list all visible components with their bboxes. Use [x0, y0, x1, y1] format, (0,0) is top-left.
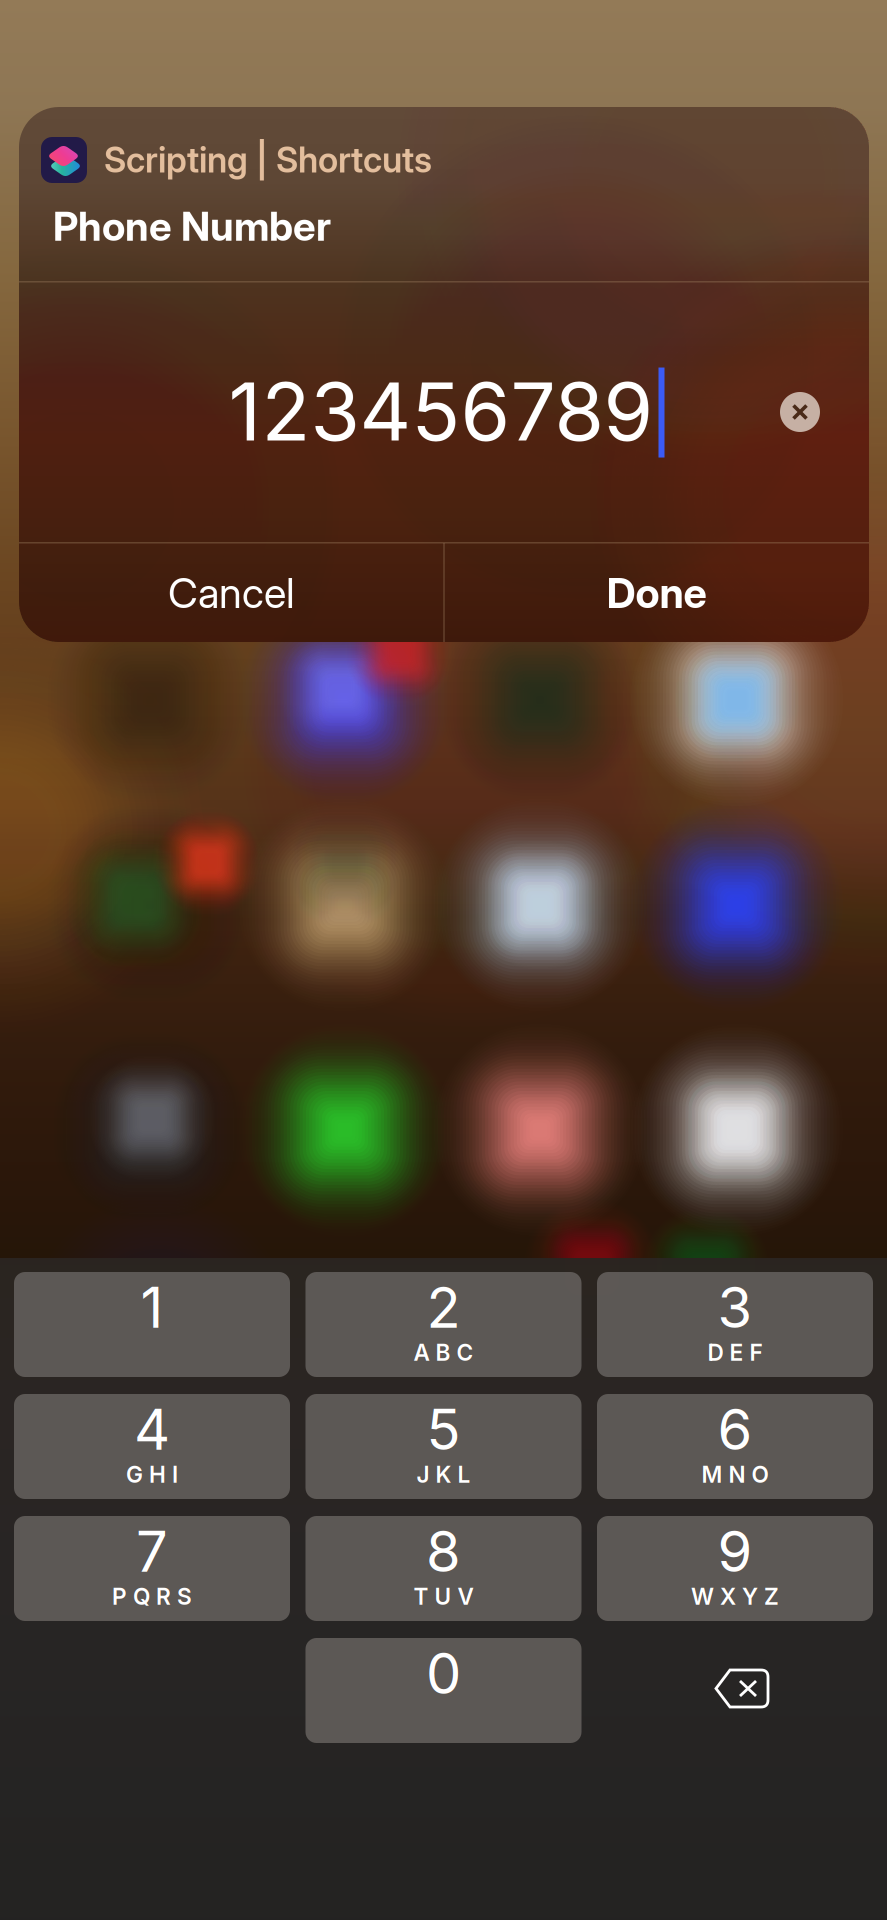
staticText: Done — [606, 568, 706, 618]
staticText: G H I — [126, 1461, 178, 1488]
button[interactable]: 4 — [14, 1394, 290, 1499]
staticText: 4 — [134, 1396, 170, 1463]
staticText: W X Y Z — [691, 1583, 779, 1610]
staticText: 8 — [426, 1518, 461, 1585]
staticText: Scripting | Shortcuts — [104, 139, 432, 181]
staticText: 1 — [140, 1274, 163, 1341]
button[interactable]: Clear text — [780, 392, 820, 432]
staticText: A B C — [413, 1339, 473, 1366]
staticText: 6 — [717, 1396, 752, 1463]
staticText: D E F — [707, 1339, 762, 1366]
button[interactable]: 0 — [305, 1638, 581, 1743]
staticText: Phone Number — [53, 202, 331, 250]
button[interactable]: Cancel — [19, 543, 444, 643]
button[interactable]: 6 — [597, 1394, 873, 1499]
button[interactable]: 2 — [305, 1272, 581, 1377]
staticText: Cancel — [168, 568, 295, 618]
button[interactable]: 1 — [14, 1272, 290, 1377]
button[interactable]: 9 — [597, 1516, 873, 1621]
staticText: 7 — [136, 1518, 168, 1585]
staticText: 9 — [717, 1518, 752, 1585]
staticText: 123456789 — [228, 363, 653, 460]
staticText: 3 — [717, 1274, 752, 1341]
button[interactable]: 8 — [305, 1516, 581, 1621]
staticText: M N O — [701, 1461, 768, 1488]
staticText: 2 — [426, 1274, 460, 1341]
staticText: 0 — [426, 1640, 461, 1707]
button[interactable]: 5 — [305, 1394, 581, 1499]
button[interactable]: Delete — [597, 1638, 873, 1743]
staticText: P Q R S — [112, 1583, 192, 1610]
button[interactable]: 3 — [597, 1272, 873, 1377]
staticText: T U V — [413, 1583, 473, 1610]
staticText: J K L — [416, 1461, 470, 1488]
button[interactable]: Done — [444, 543, 869, 643]
button[interactable]: 7 — [14, 1516, 290, 1621]
staticText: 5 — [426, 1396, 460, 1463]
